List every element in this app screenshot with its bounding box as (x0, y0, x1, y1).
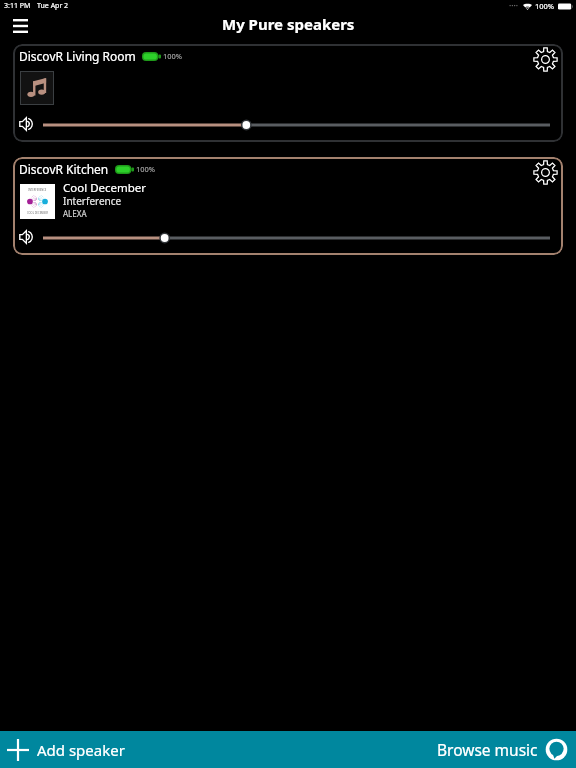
staticText: Browse music (437, 739, 538, 760)
staticText: 3:11 PM (4, 1, 31, 11)
staticText: ALEXA (63, 208, 87, 219)
button[interactable]: DiscovR Kitchen (13, 157, 563, 255)
staticText: Add speaker (37, 740, 125, 760)
button[interactable]: Browse music (427, 733, 576, 766)
staticText: 100% (535, 1, 555, 11)
staticText: Interference (63, 194, 122, 208)
button[interactable]: Add speaker (0, 734, 135, 766)
staticText: 100% (163, 51, 183, 61)
button[interactable] (43, 117, 550, 133)
staticText: Tue Apr 2 (37, 1, 69, 11)
staticText: 100% (136, 164, 156, 174)
staticText: DiscovR Living Room (19, 48, 136, 64)
button[interactable]: Volume (16, 227, 38, 249)
staticText: DiscovR Kitchen (19, 161, 109, 177)
button[interactable]: Volume (16, 114, 38, 136)
button[interactable]: Settings (531, 45, 559, 73)
button[interactable]: DiscovR Living Room (13, 44, 563, 142)
button[interactable]: Settings (531, 158, 559, 186)
staticText: My Pure speakers (222, 14, 355, 34)
staticText: •••• (509, 2, 519, 10)
button[interactable]: Menu (5, 11, 35, 41)
button[interactable] (43, 230, 550, 246)
staticText: INTERFERENCE (28, 188, 47, 192)
staticText: COOL DECEMBER (27, 211, 49, 215)
staticText: Cool December (63, 180, 147, 196)
